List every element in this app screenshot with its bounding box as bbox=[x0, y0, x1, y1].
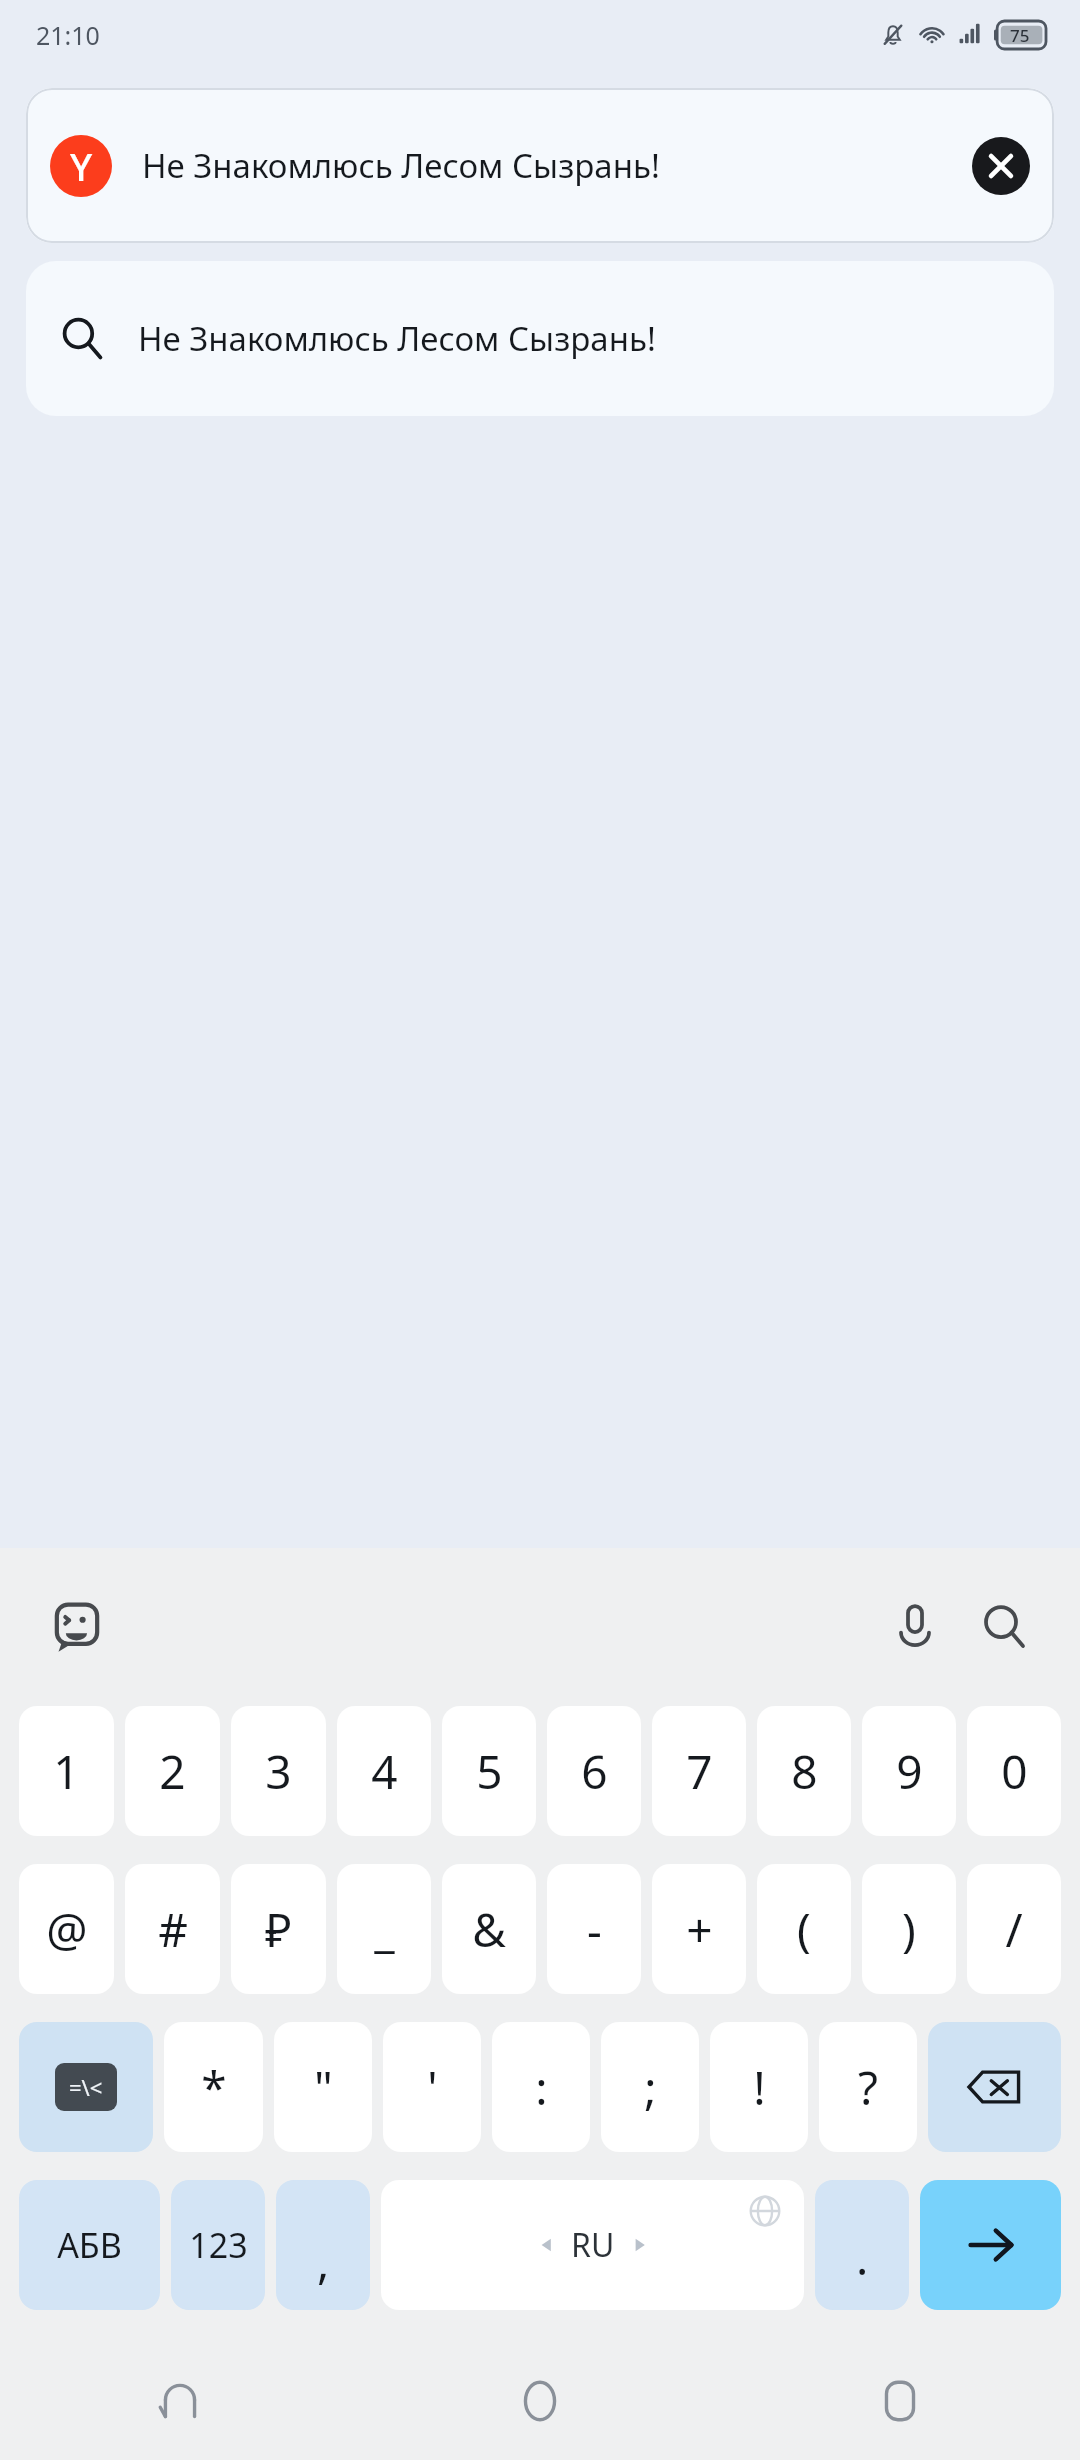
staticText: ? bbox=[858, 2056, 878, 2119]
staticText: ( bbox=[797, 1898, 811, 1961]
staticText: _ bbox=[374, 1898, 395, 1961]
button[interactable]: Не Знакомлюсь Лесом Сызрань! bbox=[26, 261, 1054, 416]
staticText: 123 bbox=[189, 2222, 248, 2268]
button[interactable]: - bbox=[547, 1864, 641, 1994]
staticText: Не Знакомлюсь Лесом Сызрань! bbox=[138, 316, 656, 361]
button[interactable]: 8 bbox=[757, 1706, 851, 1836]
button[interactable]: Recents bbox=[720, 2342, 1080, 2460]
button[interactable]: Enter bbox=[920, 2180, 1061, 2310]
staticText: ; bbox=[644, 2056, 657, 2119]
staticText: 75 bbox=[1010, 24, 1030, 47]
staticText: ' bbox=[427, 2056, 438, 2119]
staticText: ) bbox=[902, 1898, 916, 1961]
button[interactable]: & bbox=[442, 1864, 536, 1994]
button[interactable]: Symbols bbox=[19, 2022, 153, 2152]
button[interactable]: ) bbox=[862, 1864, 956, 1994]
staticText: 9 bbox=[896, 1740, 923, 1803]
staticText: ! bbox=[753, 2056, 766, 2119]
button[interactable]: Back bbox=[0, 2342, 360, 2460]
button[interactable]: 4 bbox=[337, 1706, 431, 1836]
button[interactable]: _ bbox=[337, 1864, 431, 1994]
button[interactable]: 6 bbox=[547, 1706, 641, 1836]
staticText: Не Знакомлюсь Лесом Сызрань! bbox=[142, 143, 952, 188]
button[interactable]: @ bbox=[19, 1864, 114, 1994]
staticText: ₽ bbox=[265, 1898, 292, 1961]
button[interactable]: / bbox=[967, 1864, 1061, 1994]
button[interactable]: 9 bbox=[862, 1706, 956, 1836]
staticText: 0 bbox=[1001, 1740, 1028, 1803]
button[interactable]: Y bbox=[26, 88, 1054, 243]
staticText: 3 bbox=[265, 1740, 292, 1803]
staticText: # bbox=[158, 1898, 188, 1961]
staticText: , bbox=[317, 2230, 330, 2293]
staticText: . bbox=[856, 2226, 869, 2289]
staticText: Y bbox=[70, 140, 93, 192]
staticText: * bbox=[201, 2056, 227, 2119]
staticText: - bbox=[587, 1898, 602, 1961]
button[interactable]: " bbox=[274, 2022, 372, 2152]
staticText: : bbox=[535, 2056, 548, 2119]
button[interactable]: 0 bbox=[967, 1706, 1061, 1836]
button[interactable]: * bbox=[164, 2022, 263, 2152]
staticText: 8 bbox=[791, 1740, 818, 1803]
button[interactable]: , bbox=[276, 2180, 370, 2310]
button[interactable]: ! bbox=[710, 2022, 808, 2152]
button[interactable]: ( bbox=[757, 1864, 851, 1994]
button[interactable]: Close bbox=[972, 137, 1030, 195]
staticText: 4 bbox=[371, 1740, 398, 1803]
button[interactable]: Emoji bbox=[46, 1596, 108, 1658]
staticText: / bbox=[1005, 1898, 1023, 1961]
staticText: 5 bbox=[476, 1740, 503, 1803]
button[interactable]: 2 bbox=[125, 1706, 220, 1836]
button[interactable]: Search bbox=[974, 1596, 1036, 1658]
staticText: & bbox=[472, 1898, 506, 1961]
button[interactable]: Space bbox=[381, 2180, 804, 2310]
staticText: " bbox=[314, 2056, 333, 2119]
button[interactable]: 1 bbox=[19, 1706, 114, 1836]
button[interactable]: АБВ bbox=[19, 2180, 160, 2310]
button[interactable]: ' bbox=[383, 2022, 481, 2152]
button[interactable]: 3 bbox=[231, 1706, 326, 1836]
button[interactable]: Home bbox=[360, 2342, 720, 2460]
button[interactable]: : bbox=[492, 2022, 590, 2152]
staticText: 7 bbox=[686, 1740, 713, 1803]
staticText: 21:10 bbox=[36, 18, 100, 52]
staticText: АБВ bbox=[57, 2222, 122, 2268]
button[interactable]: Voice input bbox=[884, 1596, 946, 1658]
staticText: =\< bbox=[69, 2072, 103, 2102]
button[interactable]: 5 bbox=[442, 1706, 536, 1836]
staticText: 1 bbox=[53, 1740, 80, 1803]
staticText: @ bbox=[46, 1898, 88, 1961]
button[interactable]: . bbox=[815, 2180, 909, 2310]
button[interactable]: Backspace bbox=[928, 2022, 1061, 2152]
staticText: RU bbox=[571, 2223, 615, 2267]
button[interactable]: ; bbox=[601, 2022, 699, 2152]
staticText: + bbox=[686, 1898, 713, 1961]
button[interactable]: 123 bbox=[171, 2180, 265, 2310]
button[interactable]: + bbox=[652, 1864, 746, 1994]
staticText: 2 bbox=[159, 1740, 186, 1803]
button[interactable]: 7 bbox=[652, 1706, 746, 1836]
button[interactable]: ? bbox=[819, 2022, 917, 2152]
staticText: 6 bbox=[581, 1740, 608, 1803]
button[interactable]: ₽ bbox=[231, 1864, 326, 1994]
button[interactable]: # bbox=[125, 1864, 220, 1994]
